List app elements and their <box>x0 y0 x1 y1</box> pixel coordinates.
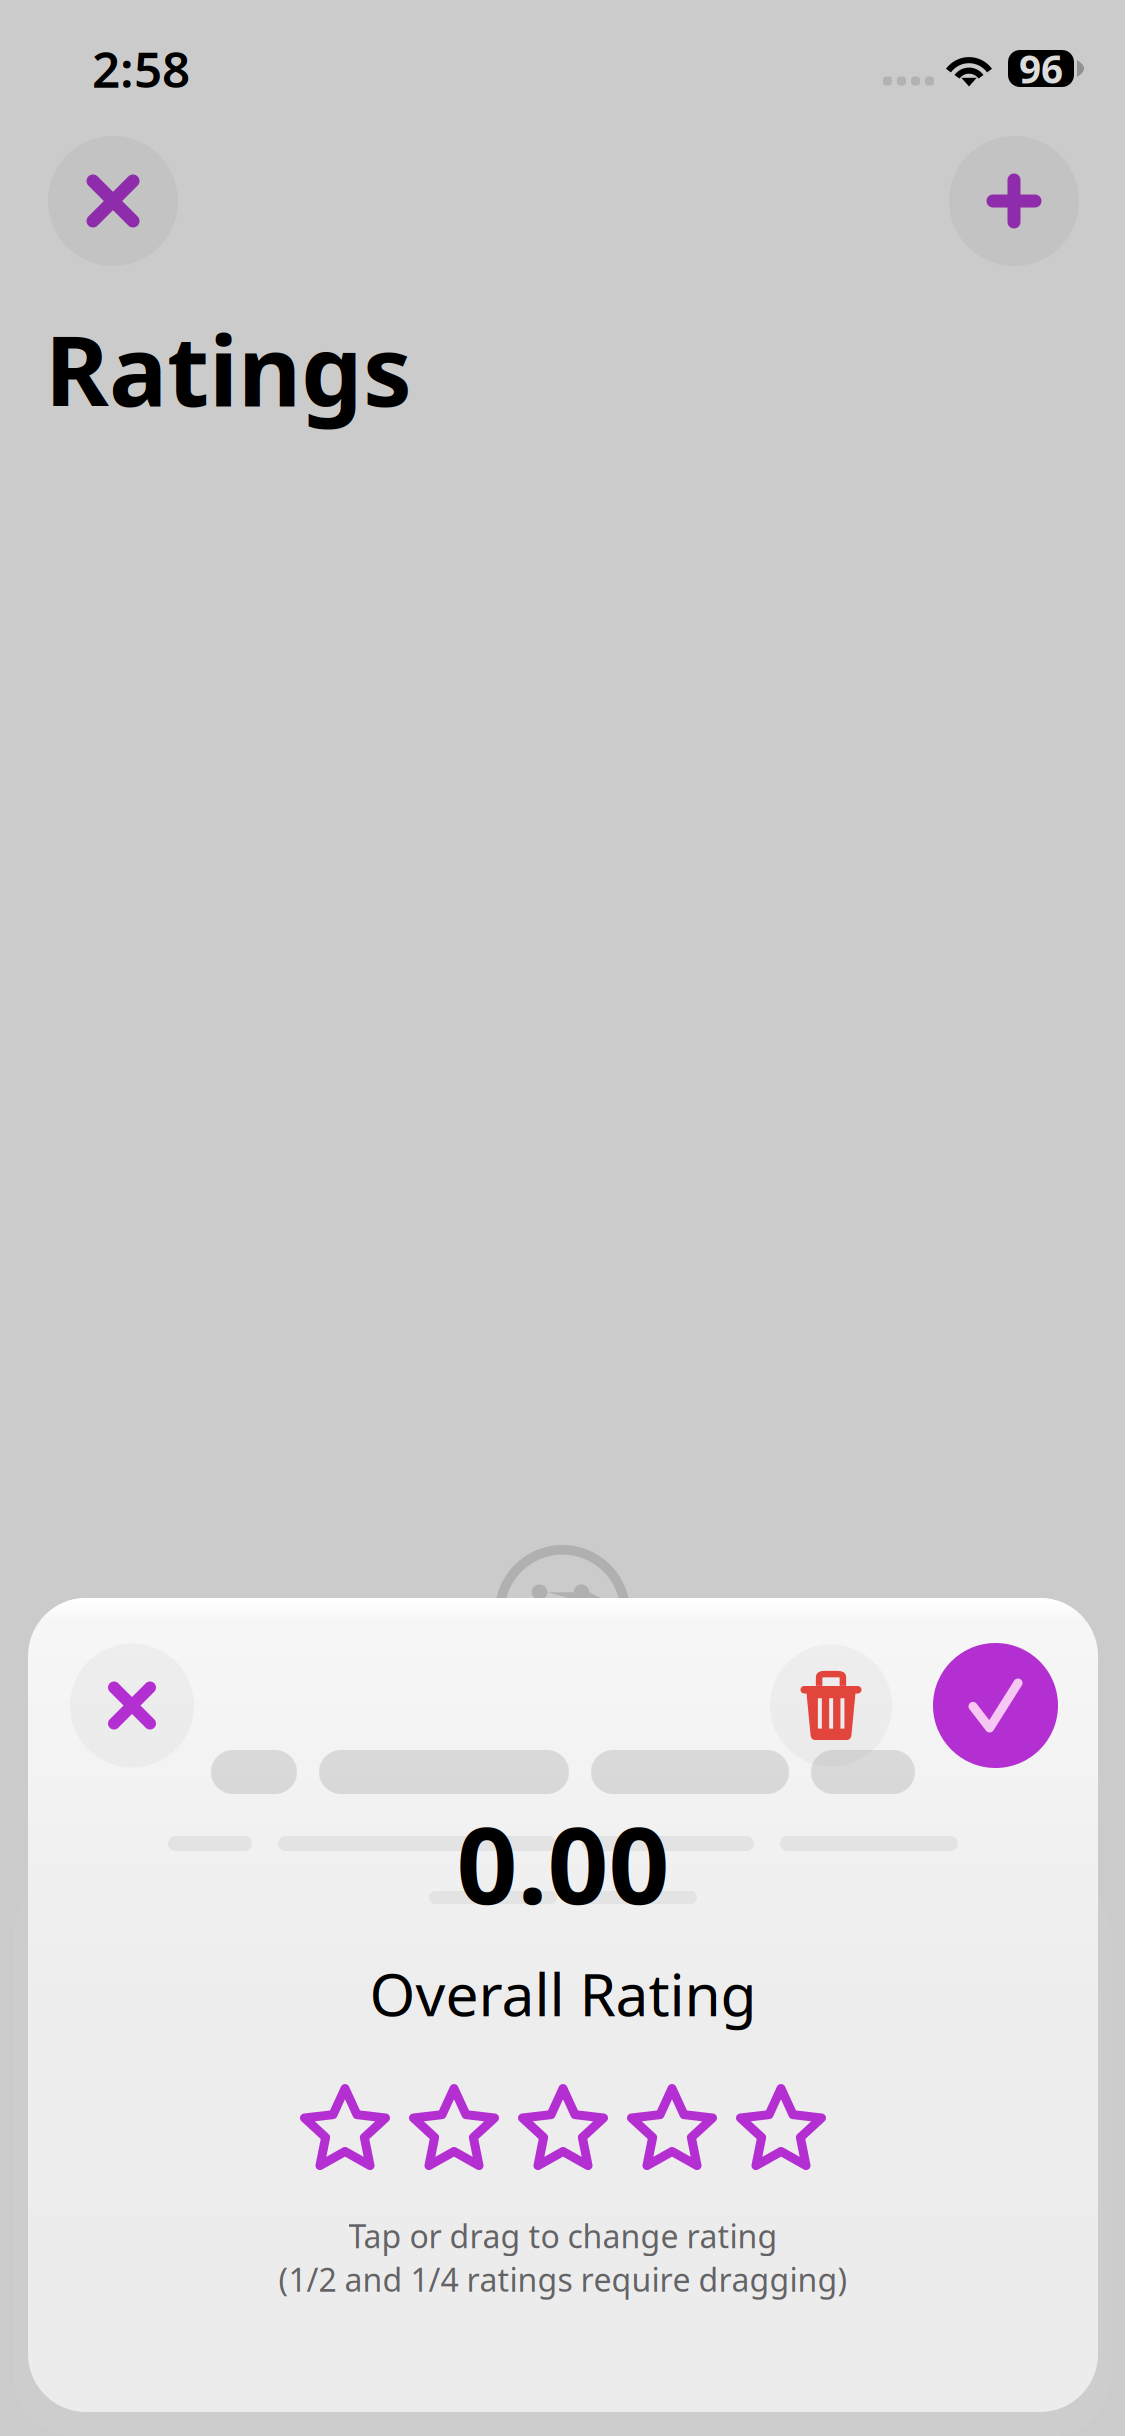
staticText: 2:58 <box>92 36 190 101</box>
button[interactable]: Delete <box>770 1644 892 1766</box>
staticText: Overall Rating <box>369 1955 756 2032</box>
staticText: Ratings <box>45 304 412 433</box>
button[interactable]: Close <box>70 1643 194 1767</box>
staticText: 0.00 <box>456 1792 669 1934</box>
staticText: 96 <box>1019 43 1063 94</box>
staticText: (1/2 and 1/4 ratings require dragging) <box>278 2258 847 2301</box>
button[interactable]: Confirm <box>933 1643 1058 1768</box>
button[interactable]: Close <box>48 136 178 266</box>
button[interactable]: Add <box>949 136 1079 266</box>
staticText: Tap or drag to change rating <box>348 2215 777 2257</box>
